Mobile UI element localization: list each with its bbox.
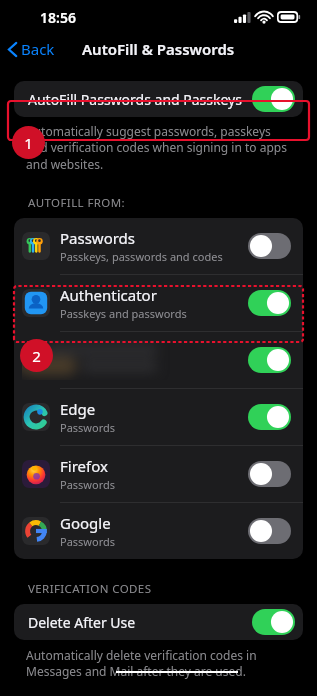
button[interactable]: Passwords toggle xyxy=(248,233,291,259)
staticText: 1 xyxy=(24,133,33,153)
staticText: Automatically delete verification codes … xyxy=(26,647,291,680)
button[interactable]: Google xyxy=(14,503,303,559)
button[interactable]: Authenticator xyxy=(14,275,303,331)
button[interactable]: Delete After Use xyxy=(14,604,303,640)
staticText: Passwords xyxy=(60,534,116,549)
staticText: VERIFICATION CODES xyxy=(28,581,152,597)
button[interactable]: Firefox toggle xyxy=(248,461,291,487)
staticText: Automatically suggest passwords, passkey… xyxy=(26,123,291,173)
staticText: Passkeys, passwords and codes xyxy=(60,249,223,264)
staticText: Passwords xyxy=(60,477,116,492)
staticText: 2 xyxy=(32,346,41,366)
staticText: Delete After Use xyxy=(28,613,252,632)
staticText: AUTOFILL FROM: xyxy=(28,195,126,211)
staticText: Passkeys and passwords xyxy=(60,306,187,321)
button[interactable]: Delete After Use toggle xyxy=(252,609,295,635)
staticText: Google xyxy=(60,513,111,533)
staticText: Back xyxy=(21,39,55,59)
staticText: 18:56 xyxy=(40,8,76,27)
staticText: Passwords xyxy=(60,228,136,248)
staticText: AutoFill & Passwords xyxy=(82,39,235,59)
button[interactable]: Back xyxy=(0,35,63,63)
button[interactable]: Redacted app toggle xyxy=(14,332,303,388)
button[interactable]: Firefox xyxy=(14,446,303,502)
button[interactable]: Edge toggle xyxy=(248,404,291,430)
button[interactable]: Passwords xyxy=(14,218,303,274)
staticText: Edge xyxy=(60,399,96,419)
button[interactable]: Redacted app toggle xyxy=(248,347,291,373)
button[interactable]: Authenticator toggle xyxy=(248,290,291,316)
button[interactable]: AutoFill Passwords and Passkeys toggle xyxy=(252,86,295,112)
staticText: Passwords xyxy=(60,420,116,435)
staticText: Firefox xyxy=(60,456,108,476)
button[interactable]: AutoFill Passwords and Passkeys xyxy=(14,81,303,117)
button[interactable]: Google toggle xyxy=(248,518,291,544)
button[interactable]: Edge xyxy=(14,389,303,445)
staticText: Authenticator xyxy=(60,285,157,305)
staticText: AutoFill Passwords and Passkeys xyxy=(28,90,252,109)
